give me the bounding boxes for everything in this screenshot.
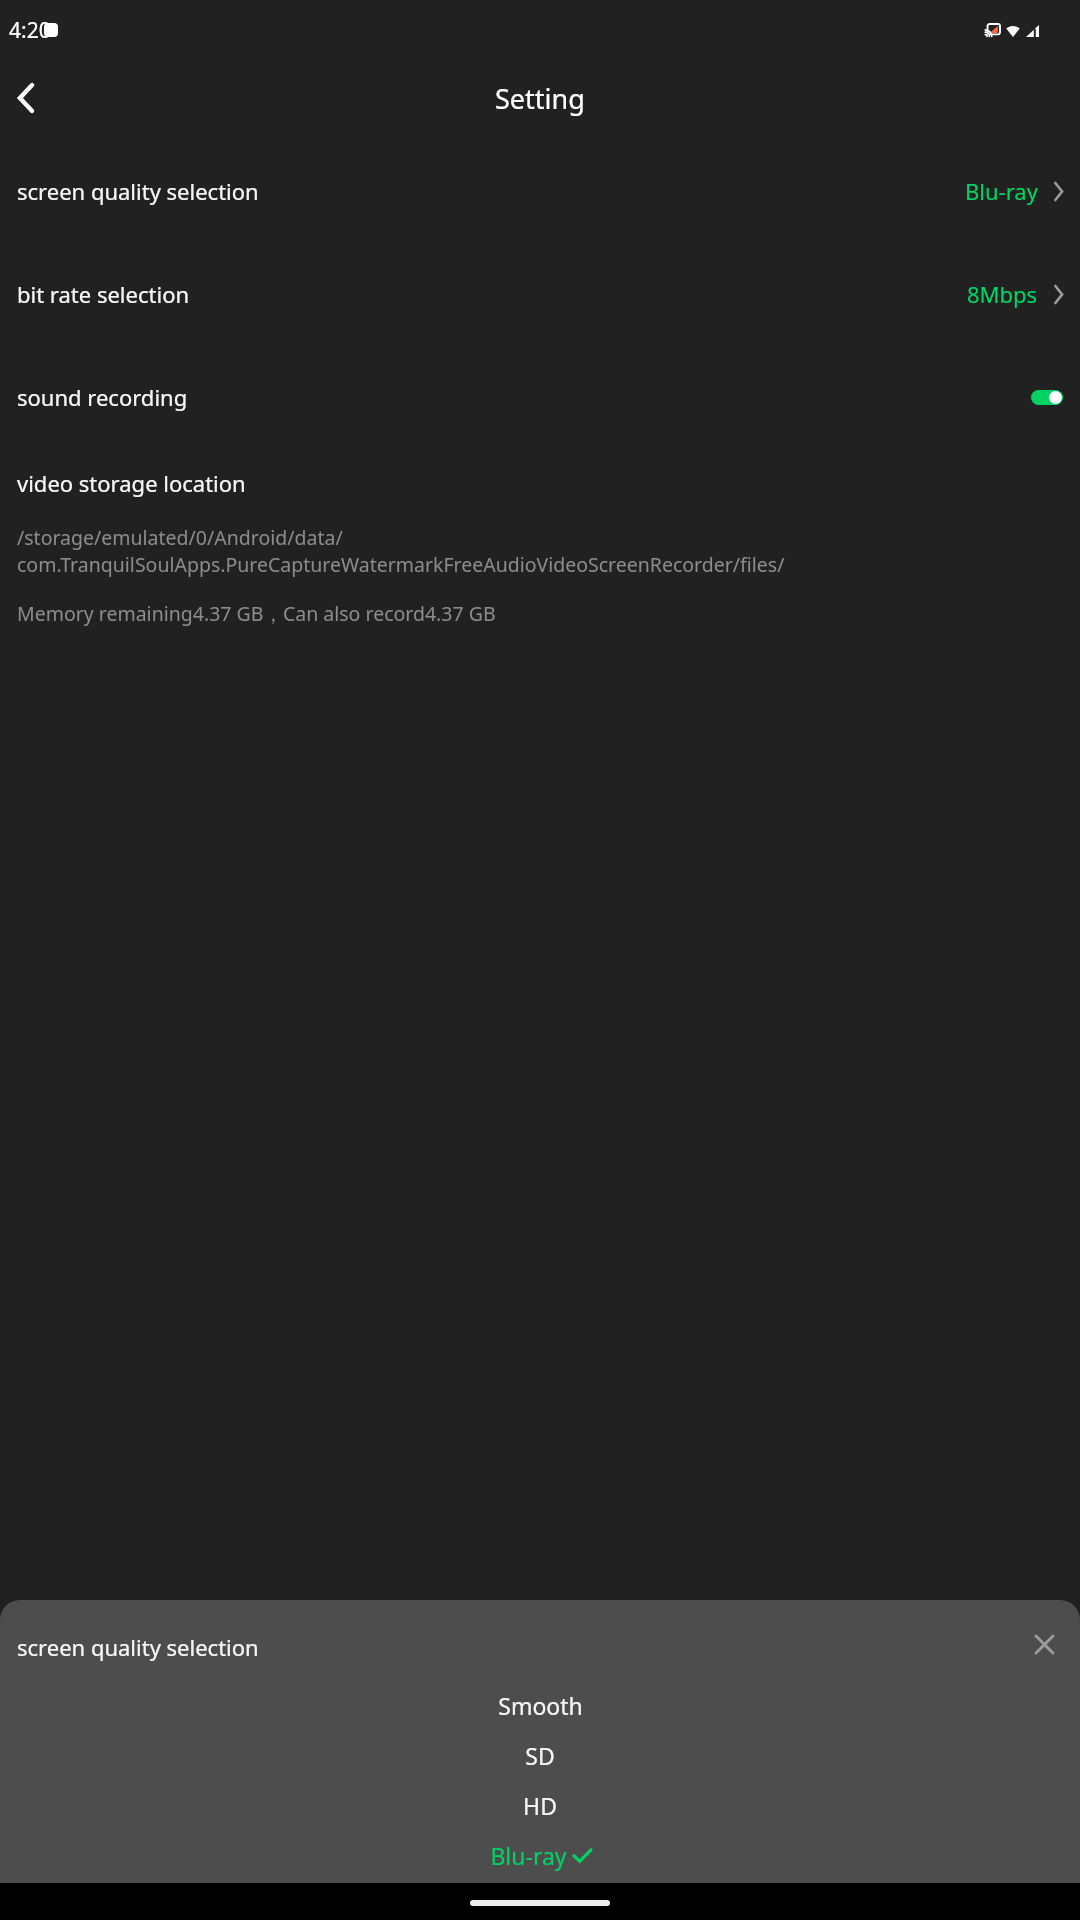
staticText: screen quality selection <box>17 176 259 206</box>
staticText: screen quality selection <box>17 1632 259 1662</box>
button[interactable]: Close <box>1022 1622 1066 1666</box>
staticText: Blu-ray <box>965 176 1038 206</box>
button[interactable]: screen quality selection <box>0 166 1080 216</box>
staticText: SD <box>525 1740 555 1771</box>
staticText: bit rate selection <box>17 279 190 309</box>
staticText: HD <box>523 1790 557 1821</box>
staticText: 4:20 <box>9 16 51 45</box>
button[interactable]: sound recording <box>0 372 1080 422</box>
staticText: Memory remaining4.37 GB，Can also record4… <box>17 600 496 627</box>
staticText: video storage location <box>17 468 246 498</box>
staticText: Blu-ray <box>490 1840 567 1871</box>
button[interactable]: Blu-ray <box>0 1830 1080 1880</box>
staticText: Setting <box>495 80 585 117</box>
staticText: 8Mbps <box>967 279 1038 309</box>
button[interactable]: Back <box>0 72 52 124</box>
button[interactable]: bit rate selection <box>0 269 1080 319</box>
staticText: Smooth <box>498 1690 583 1721</box>
staticText: sound recording <box>17 382 188 412</box>
staticText: /storage/emulated/0/Android/data/com.Tra… <box>17 524 1040 578</box>
button[interactable]: HD <box>0 1780 1080 1830</box>
button[interactable]: SD <box>0 1730 1080 1780</box>
button[interactable]: Smooth <box>0 1680 1080 1730</box>
